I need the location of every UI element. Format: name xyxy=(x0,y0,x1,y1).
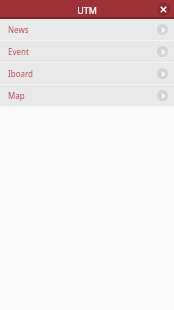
staticText: Map xyxy=(8,90,25,101)
button[interactable]: Event xyxy=(0,41,174,62)
button[interactable]: Map xyxy=(0,85,174,106)
staticText: UTM xyxy=(77,4,97,16)
staticText: Iboard xyxy=(8,68,34,79)
staticText: Event xyxy=(8,46,29,57)
button[interactable]: News xyxy=(0,19,174,40)
button[interactable]: Iboard xyxy=(0,63,174,84)
button[interactable]: Close xyxy=(157,3,170,16)
staticText: News xyxy=(8,24,29,35)
